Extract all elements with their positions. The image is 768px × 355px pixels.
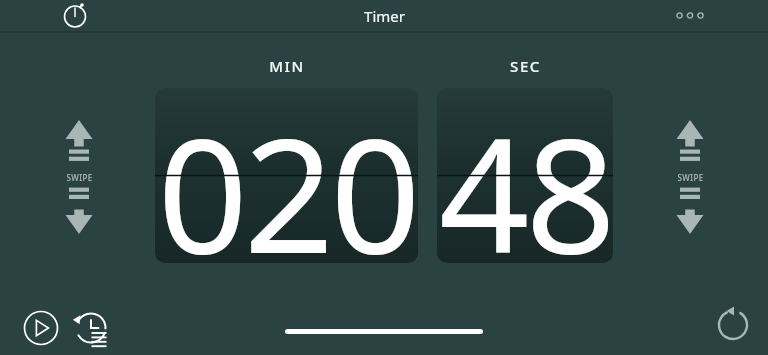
button[interactable]: Minutes 020 — [155, 88, 418, 263]
button[interactable]: Swipe to adjust — [54, 118, 104, 236]
button[interactable]: Timer history — [70, 306, 114, 350]
staticText: SWIPE — [677, 172, 704, 183]
button[interactable]: More options — [667, 0, 713, 31]
button[interactable]: Start timer — [19, 306, 63, 350]
staticText: SWIPE — [66, 172, 93, 183]
button[interactable]: Stopwatch — [55, 0, 95, 31]
button[interactable]: Seconds 48 — [437, 88, 613, 263]
staticText: SEC — [510, 56, 541, 76]
staticText: MIN — [269, 56, 305, 76]
staticText: 48 — [439, 88, 612, 259]
button[interactable]: Reset timer — [711, 303, 755, 347]
staticText: 020 — [157, 88, 417, 259]
button[interactable]: Swipe to adjust — [665, 118, 715, 236]
staticText: Timer — [364, 6, 405, 26]
